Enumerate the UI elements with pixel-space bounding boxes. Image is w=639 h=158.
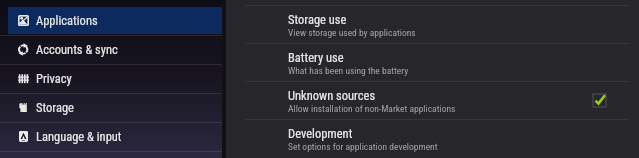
button[interactable]: Language and input xyxy=(0,122,222,151)
button[interactable]: Accounts and sync xyxy=(0,35,222,64)
staticText: Applications xyxy=(36,13,98,28)
button[interactable]: Applications xyxy=(0,6,222,35)
staticText: Language & input xyxy=(36,129,122,144)
staticText: Privacy xyxy=(36,71,72,86)
button[interactable]: Unknown sources xyxy=(226,81,639,119)
staticText: Development xyxy=(288,126,353,141)
staticText: Set options for application development xyxy=(288,141,438,152)
staticText: Battery use xyxy=(288,50,344,65)
button[interactable]: Development xyxy=(226,119,639,157)
staticText: What has been using the battery xyxy=(288,65,409,76)
other: Privacy xyxy=(18,73,29,84)
staticText: View storage used by applications xyxy=(288,27,416,38)
staticText: Storage xyxy=(36,100,74,115)
button[interactable]: Storage use xyxy=(226,5,639,43)
button[interactable]: Storage xyxy=(0,93,222,122)
staticText: Unknown sources xyxy=(288,88,376,103)
button[interactable]: Privacy xyxy=(0,64,222,93)
other: Applications xyxy=(18,15,29,26)
staticText: Allow installation of non-Market applica… xyxy=(288,103,456,114)
button[interactable] xyxy=(0,151,222,158)
staticText: Accounts & sync xyxy=(36,42,118,57)
other: Language and input xyxy=(18,131,29,142)
other: Storage xyxy=(18,102,29,113)
staticText: Storage use xyxy=(288,12,347,27)
other: Accounts and sync xyxy=(18,44,29,55)
button[interactable]: Battery use xyxy=(226,43,639,81)
button[interactable]: Unknown sources checkbox xyxy=(593,94,606,107)
